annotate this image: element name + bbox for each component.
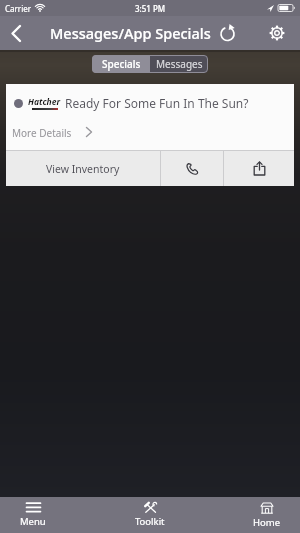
button[interactable]: Specials [92,55,150,73]
staticText: Messages [156,57,203,71]
button[interactable] [264,20,290,46]
button[interactable] [214,20,240,46]
staticText: View Inventory [46,162,120,176]
staticText: Carrier [5,3,32,14]
staticText: Ready For Some Fun In The Sun? [65,95,249,111]
button[interactable] [161,151,223,186]
staticText: Specials [102,57,141,71]
staticText: Hatcher [28,96,61,108]
button[interactable]: Messages [150,55,208,73]
staticText: Messages/App Specials [50,23,211,43]
button[interactable]: Toolkit [123,497,177,533]
button[interactable] [224,151,294,186]
button[interactable]: Menu [6,497,60,533]
button[interactable]: More Details [12,126,92,138]
staticText: More Details [12,126,72,138]
button[interactable]: View Inventory [6,151,160,186]
staticText: 3:51 PM [135,3,166,14]
button[interactable] [4,21,28,45]
staticText: Menu [20,515,46,528]
button[interactable]: Home [240,497,294,533]
staticText: Toolkit [135,515,165,528]
button[interactable]: Hatcher [6,84,294,186]
staticText: Home [253,516,281,529]
